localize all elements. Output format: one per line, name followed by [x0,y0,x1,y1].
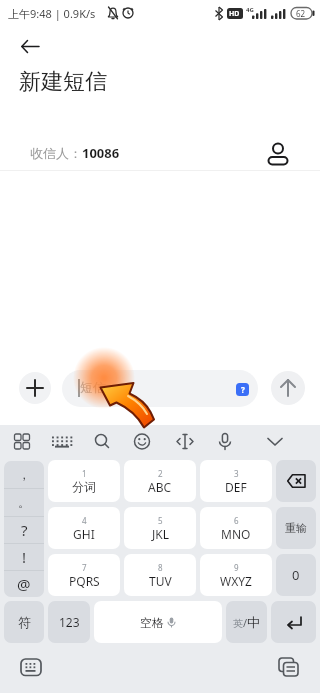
staticText: 62 [296,8,306,19]
staticText: WXYZ [220,573,252,589]
button[interactable]: 0 [276,554,316,596]
staticText: 。 [18,495,30,510]
staticText: JKL [152,526,169,542]
staticText: 短信 [80,379,106,395]
staticText: DEF [225,479,247,495]
staticText: 新建短信 [19,68,107,96]
staticText: 符 [18,614,31,630]
staticText: 收信人： [30,145,82,161]
staticText: 8 [158,562,163,573]
button[interactable] [271,371,305,405]
button[interactable]: 收信人： [0,138,320,168]
staticText: ? [241,384,245,395]
button[interactable]: 1 [48,460,120,502]
staticText: ABC [148,479,172,495]
staticText: 5 [158,515,163,526]
staticText: 上午9:48 | 0.9K/s [8,6,96,21]
button[interactable]: 5 [124,507,196,549]
staticText: ， [18,467,30,482]
button[interactable]: 英/中 [226,601,267,643]
staticText: HD [229,9,240,19]
button[interactable]: 3 [200,460,272,502]
staticText: 123 [59,614,80,630]
staticText: TUV [149,573,172,589]
staticText: 7 [82,562,87,573]
button[interactable] [10,32,50,60]
staticText: 1 [82,468,87,479]
staticText: ? [21,520,28,540]
staticText: MNO [221,526,251,542]
button[interactable] [271,601,316,643]
staticText: 分词 [72,479,96,494]
button[interactable]: 2 [124,460,196,502]
button[interactable]: 空格 [94,601,222,643]
button[interactable]: ， [4,461,44,597]
staticText: 2 [158,468,163,479]
button[interactable]: 重输 [276,507,316,549]
staticText: 0 [292,566,300,584]
button[interactable]: 7 [48,554,120,596]
button[interactable] [19,372,51,404]
staticText: 4G [246,6,254,14]
button[interactable] [276,460,316,502]
button[interactable]: 123 [48,601,90,643]
staticText: 10086 [82,144,120,162]
staticText: 6 [234,515,239,526]
staticText: ! [22,547,27,567]
button[interactable] [268,142,288,164]
staticText: 9 [234,562,239,573]
button[interactable]: 8 [124,554,196,596]
button[interactable]: 9 [200,554,272,596]
staticText: 重输 [285,521,307,535]
staticText: 空格 [140,615,164,630]
staticText: GHI [73,526,95,542]
staticText: 英/中 [233,614,261,630]
staticText: 4 [82,515,87,526]
staticText: 3 [234,468,239,479]
button[interactable]: 6 [200,507,272,549]
button[interactable]: 短信 [62,370,258,407]
button[interactable]: 4 [48,507,120,549]
staticText: PQRS [69,573,100,589]
button[interactable]: 符 [4,601,44,643]
staticText: @ [17,574,31,594]
